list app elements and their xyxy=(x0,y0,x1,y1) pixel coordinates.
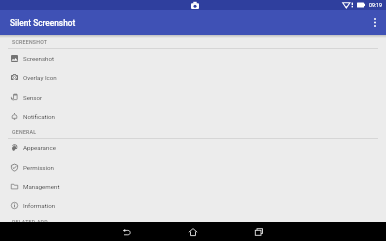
button[interactable]: More options xyxy=(364,10,386,35)
button[interactable]: Sensor xyxy=(0,88,386,107)
staticText: Management xyxy=(23,183,60,190)
staticText: Permission xyxy=(23,164,55,171)
button[interactable]: Recent apps xyxy=(226,222,292,241)
staticText: Appearance xyxy=(23,144,56,151)
staticText: GENERAL xyxy=(12,129,37,135)
staticText: Silent Screenshot xyxy=(10,18,76,28)
button[interactable]: Management xyxy=(0,177,386,196)
staticText: Screenshot xyxy=(23,55,55,62)
button[interactable]: Permission xyxy=(0,158,386,177)
button[interactable]: Home xyxy=(160,222,226,241)
button[interactable]: Notification xyxy=(0,107,386,126)
button[interactable]: Screenshot xyxy=(0,49,386,68)
staticText: Sensor xyxy=(23,94,43,101)
staticText: Overlay Icon xyxy=(23,74,57,81)
button[interactable]: Information xyxy=(0,196,386,215)
staticText: 09:19 xyxy=(369,2,382,8)
button[interactable]: Appearance xyxy=(0,138,386,157)
staticText: RELATED APP xyxy=(12,219,48,225)
staticText: Information xyxy=(23,202,56,209)
staticText: SCREENSHOT xyxy=(12,39,48,45)
staticText: Notification xyxy=(23,113,55,120)
button[interactable]: Overlay Icon xyxy=(0,68,386,87)
button[interactable]: Back xyxy=(94,222,160,241)
